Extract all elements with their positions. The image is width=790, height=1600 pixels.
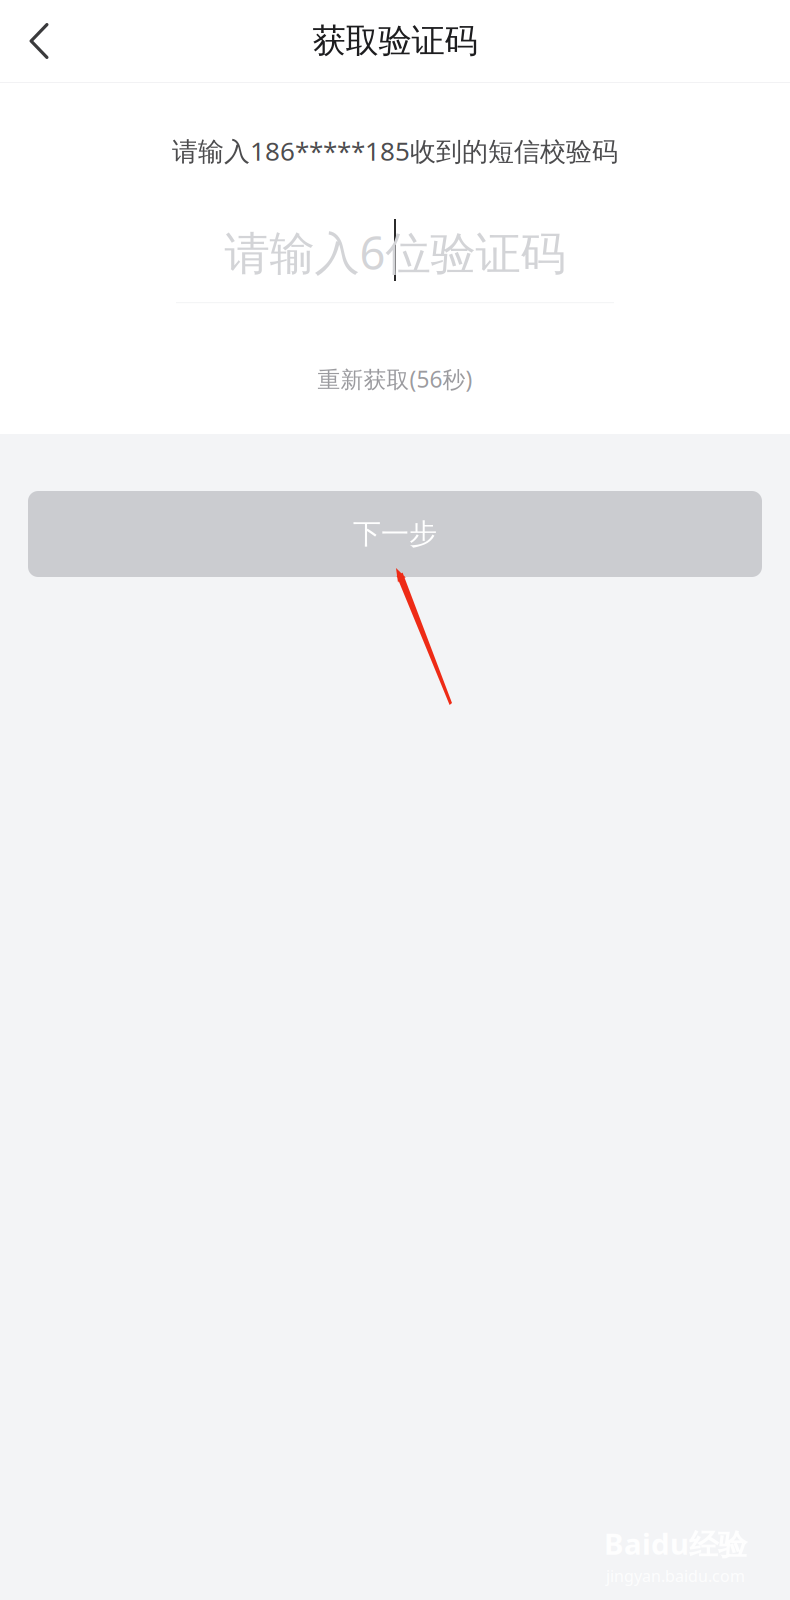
button[interactable]: Back xyxy=(0,0,78,82)
button[interactable]: 下一步 xyxy=(28,491,762,577)
button[interactable]: 重新获取(56秒) xyxy=(307,358,482,400)
staticText: 请输入186*****185收到的短信校验码 xyxy=(172,133,618,168)
staticText: 重新获取(56秒) xyxy=(317,364,472,394)
staticText: Baidu经验 xyxy=(604,1524,747,1563)
staticText: 获取验证码 xyxy=(312,20,477,61)
staticText: 下一步 xyxy=(353,517,437,551)
staticText: 请输入6位验证码 xyxy=(224,222,565,282)
